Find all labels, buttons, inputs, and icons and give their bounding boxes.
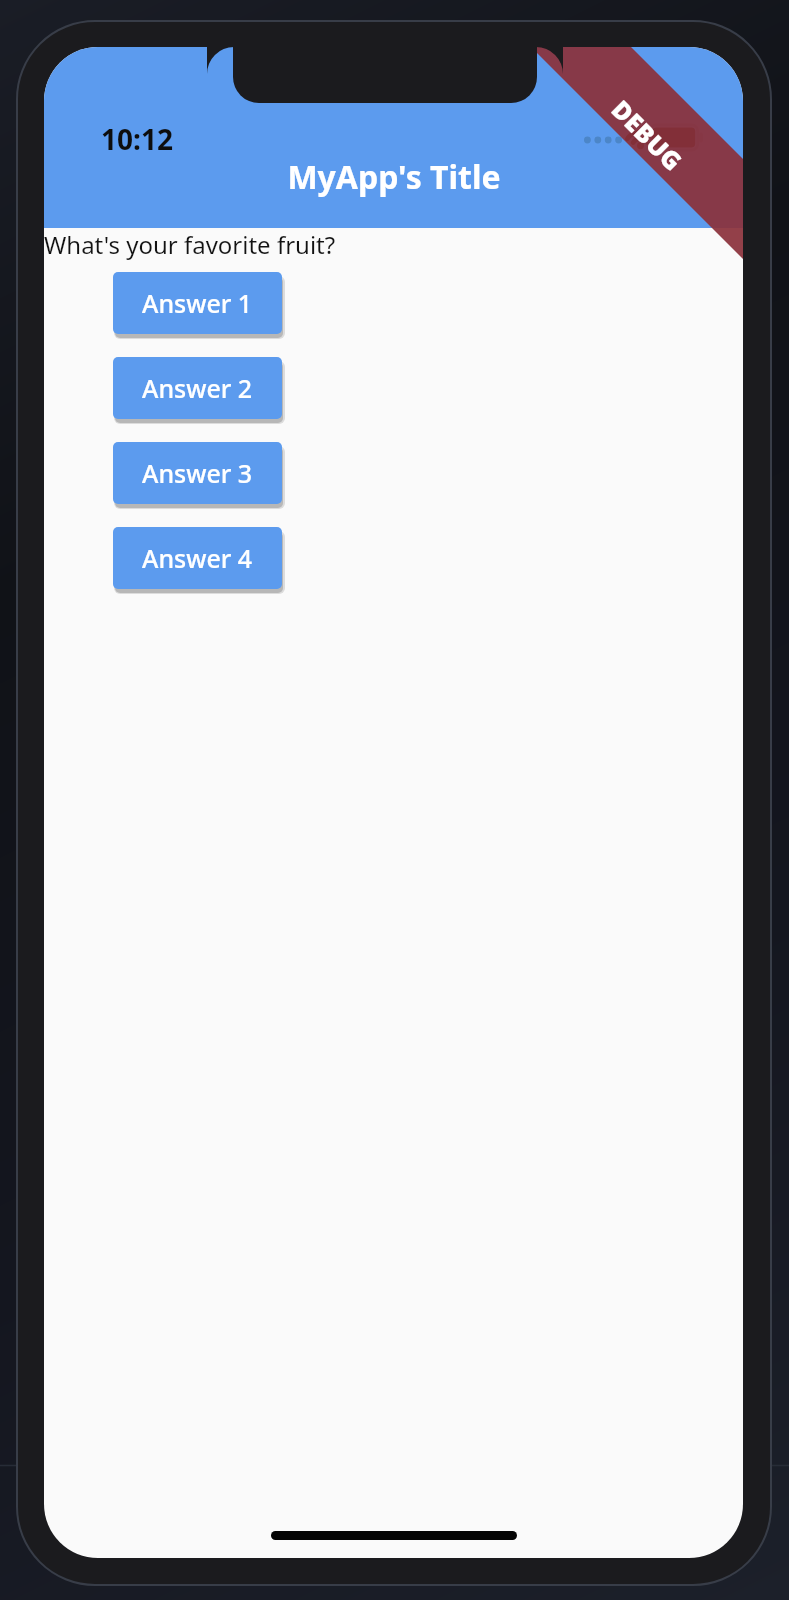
button[interactable]: Answer 4: [113, 527, 282, 589]
staticText: Answer 1: [142, 286, 253, 320]
staticText: Answer 2: [142, 371, 253, 405]
button[interactable]: Answer 1: [113, 272, 282, 334]
button[interactable]: Answer 3: [113, 442, 282, 504]
staticText: Answer 3: [142, 456, 253, 490]
staticText: 10:12: [101, 120, 173, 158]
button[interactable]: Answer 2: [113, 357, 282, 419]
other: Battery: [650, 125, 703, 150]
staticText: MyApp's Title: [287, 155, 501, 199]
other: Wi-Fi: [624, 120, 657, 150]
staticText: DEBUG: [605, 92, 690, 178]
staticText: What's your favorite fruit?: [44, 228, 336, 261]
staticText: Answer 4: [142, 541, 253, 575]
